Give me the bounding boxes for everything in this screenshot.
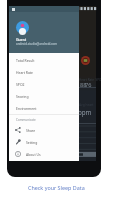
staticText: Share xyxy=(26,128,36,133)
staticText: 76 xyxy=(85,81,92,89)
button[interactable]: Share xyxy=(9,124,79,136)
staticText: Guest xyxy=(16,37,27,42)
button[interactable]: SPO2 xyxy=(9,78,79,90)
staticText: 88 xyxy=(80,81,87,89)
staticText: Avg heart xyxy=(79,103,94,107)
staticText: Total Result xyxy=(16,58,35,63)
button[interactable]: Environment xyxy=(9,102,79,114)
staticText: Heart Rate SPO2 xyxy=(79,78,101,82)
staticText: android.studio@android.com xyxy=(16,42,58,46)
staticText: Check your Sleep Data xyxy=(28,184,85,191)
staticText: Snoring xyxy=(16,94,29,99)
button[interactable]: Heart Rate xyxy=(9,66,79,78)
staticText: SPO2 xyxy=(16,82,25,87)
button[interactable]: Snoring xyxy=(9,90,79,102)
staticText: About Us xyxy=(26,152,41,157)
staticText: Setting xyxy=(26,140,38,145)
button[interactable]: Setting xyxy=(9,136,79,148)
staticText: Heart Rate xyxy=(16,70,33,75)
staticText: Communicate xyxy=(16,118,36,122)
staticText: Environment xyxy=(16,106,37,111)
button[interactable]: About Us xyxy=(9,148,79,160)
button[interactable]: Total Result xyxy=(9,54,79,66)
staticText: bpm xyxy=(78,108,92,116)
